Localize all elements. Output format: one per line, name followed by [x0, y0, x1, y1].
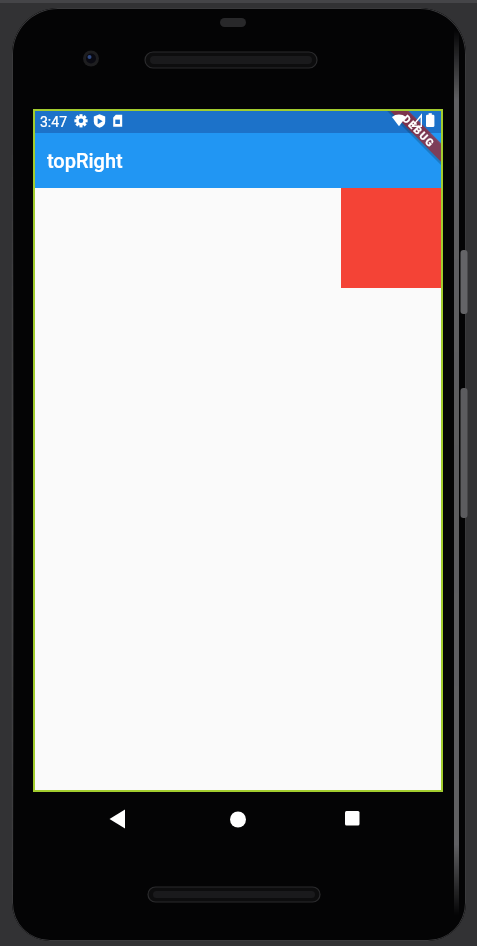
staticText: 3:47 — [40, 114, 67, 130]
staticText: DEBUG — [400, 112, 438, 150]
staticText: topRight — [47, 149, 123, 172]
button[interactable] — [220, 799, 256, 839]
button[interactable] — [334, 799, 370, 839]
button[interactable] — [99, 799, 135, 839]
